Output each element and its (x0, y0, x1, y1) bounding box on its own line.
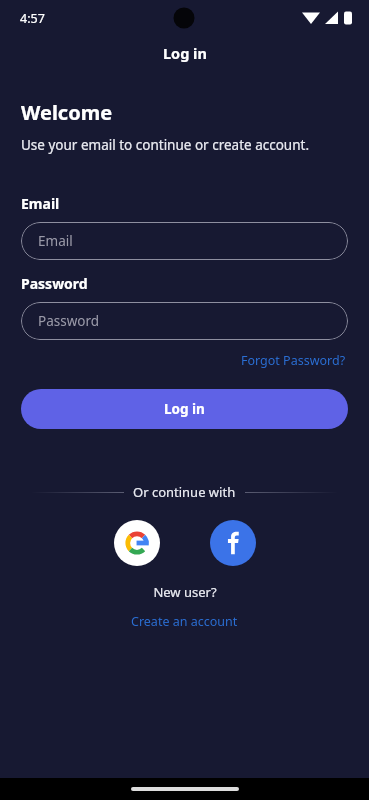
button[interactable]: Log in (21, 389, 348, 429)
staticText: Email (38, 232, 73, 250)
staticText: Log in (164, 400, 205, 418)
staticText: New user? (153, 583, 217, 601)
staticText: Welcome (21, 99, 113, 126)
staticText: Forgot Password? (241, 352, 346, 369)
button[interactable]: Password (21, 302, 348, 340)
button[interactable]: Email (21, 222, 348, 260)
staticText: Password (38, 312, 100, 330)
button[interactable]: Sign in with Facebook (210, 520, 256, 566)
staticText: Password (21, 274, 88, 293)
staticText: Use your email to continue or create acc… (21, 136, 310, 154)
button[interactable]: Create an account (127, 611, 242, 632)
staticText: 4:57 (20, 10, 45, 27)
button[interactable]: Sign in with Google (114, 520, 160, 566)
staticText: Or continue with (133, 483, 236, 501)
staticText: Log in (163, 43, 207, 63)
button[interactable]: Forgot Password? (239, 350, 348, 371)
staticText: Email (21, 194, 60, 213)
staticText: Create an account (131, 613, 238, 630)
